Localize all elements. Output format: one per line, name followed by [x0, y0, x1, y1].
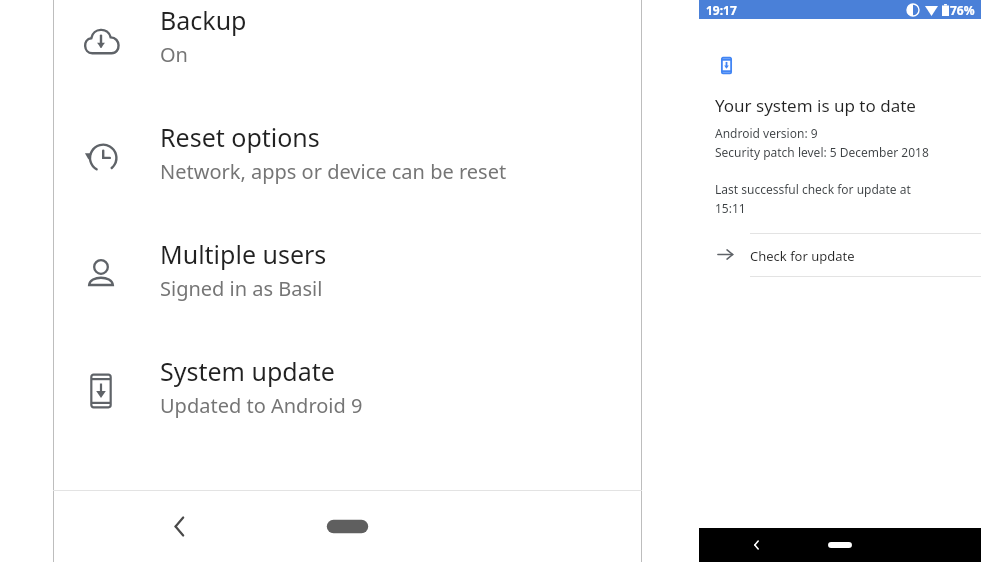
staticText: Security patch level: 5 December 2018: [715, 144, 929, 160]
staticText: Updated to Android 9: [160, 392, 363, 419]
button[interactable]: Home: [325, 504, 370, 549]
staticText: Backup: [160, 3, 247, 37]
staticText: Network, apps or device can be reset: [160, 158, 507, 185]
staticText: System update: [160, 354, 335, 388]
button[interactable]: Back: [747, 535, 767, 555]
button[interactable]: Reset options: [53, 117, 642, 234]
button[interactable]: Multiple users: [53, 234, 642, 351]
staticText: Reset options: [160, 120, 320, 154]
staticText: 76%: [950, 2, 975, 18]
staticText: On: [160, 41, 188, 68]
staticText: Last successful check for update at 15:1…: [715, 181, 911, 216]
staticText: Multiple users: [160, 237, 327, 271]
staticText: Signed in as Basil: [160, 275, 323, 302]
button[interactable]: System update: [53, 351, 642, 468]
staticText: Android version: 9: [715, 125, 818, 141]
staticText: Check for update: [750, 247, 855, 265]
button[interactable]: Check for update: [699, 233, 981, 277]
staticText: 19:17: [706, 2, 737, 18]
button[interactable]: Backup: [53, 0, 642, 117]
button[interactable]: Home: [827, 535, 853, 555]
button[interactable]: Back: [158, 504, 203, 549]
staticText: Your system is up to date: [715, 94, 916, 117]
